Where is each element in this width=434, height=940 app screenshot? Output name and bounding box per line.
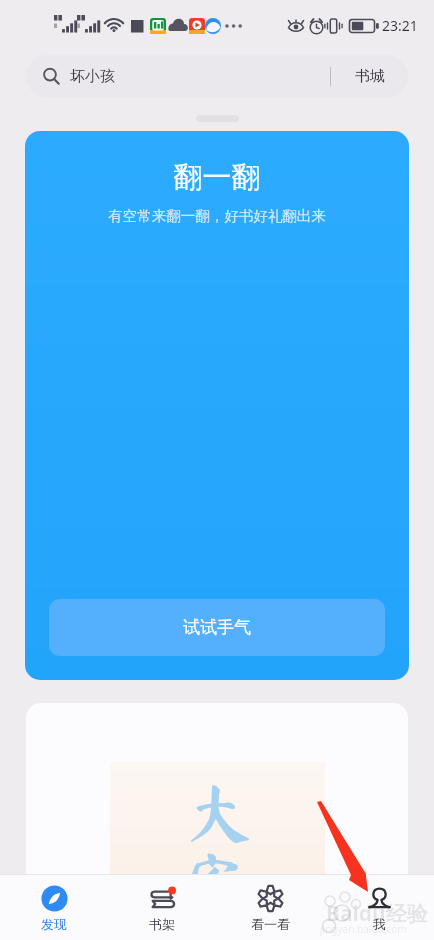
button[interactable]: 试试手气 bbox=[49, 599, 385, 656]
staticText: 书架 bbox=[149, 916, 175, 932]
staticText: 试试手气 bbox=[183, 617, 251, 638]
staticText: 书城 bbox=[355, 67, 385, 86]
button[interactable]: 翻一翻 bbox=[25, 131, 409, 680]
staticText: 23:21 bbox=[382, 16, 418, 35]
staticText: 翻一翻 bbox=[25, 159, 409, 196]
button[interactable]: 书城 bbox=[331, 57, 408, 96]
button[interactable]: Profile bbox=[325, 875, 434, 940]
button[interactable]: Search bbox=[26, 55, 408, 98]
staticText: 大 宅 bbox=[183, 775, 253, 892]
button[interactable]: Bookshelf bbox=[108, 875, 216, 940]
staticText: 看一看 bbox=[251, 916, 290, 932]
other: Search bbox=[42, 67, 61, 86]
button[interactable]: Browse bbox=[216, 875, 325, 940]
staticText: 发现 bbox=[41, 916, 67, 932]
staticText: Baidu经验 bbox=[326, 899, 428, 928]
staticText: jingyan.baidu.com bbox=[320, 922, 407, 936]
staticText: 我 bbox=[373, 916, 386, 932]
staticText: 有空常来翻一翻，好书好礼翻出来 bbox=[25, 207, 409, 225]
staticText: 坏小孩 bbox=[70, 67, 115, 86]
button[interactable]: 大 宅 bbox=[26, 703, 408, 903]
button[interactable]: Discover bbox=[0, 875, 108, 940]
